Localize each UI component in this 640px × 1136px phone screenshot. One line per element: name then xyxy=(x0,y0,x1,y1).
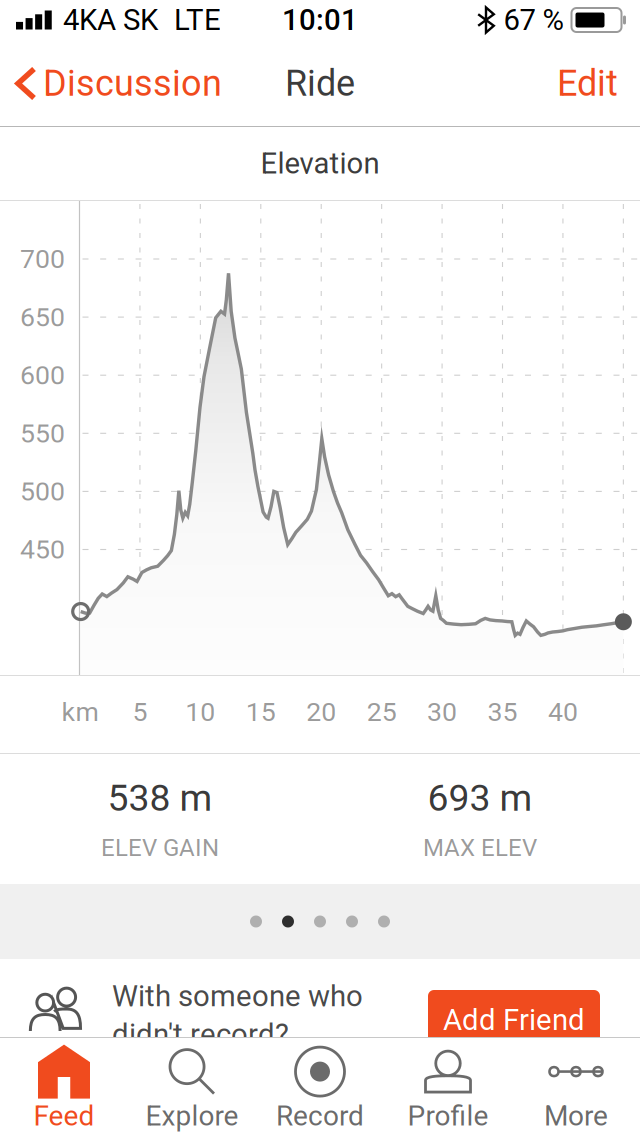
button[interactable]: Record xyxy=(256,1037,384,1135)
staticText: 693 m xyxy=(427,776,532,820)
staticText: didn't record? xyxy=(112,1017,289,1052)
staticText: Feed xyxy=(33,1100,94,1132)
button[interactable]: Profile xyxy=(384,1037,512,1135)
staticText: Record xyxy=(276,1100,364,1132)
button[interactable]: Edit xyxy=(535,40,640,127)
staticText: LTE xyxy=(174,3,221,37)
staticText: Discussion xyxy=(43,62,222,105)
staticText: ELEV GAIN xyxy=(101,834,219,862)
staticText: Elevation xyxy=(260,146,379,181)
staticText: 25 xyxy=(367,696,397,728)
staticText: 30 xyxy=(427,696,457,728)
button[interactable]: Discussion xyxy=(0,40,232,127)
button[interactable]: Feed xyxy=(0,1037,128,1135)
staticText: Explore xyxy=(145,1100,238,1132)
staticText: 500 xyxy=(20,476,65,507)
staticText: 600 xyxy=(20,360,65,391)
staticText: 650 xyxy=(20,301,65,333)
staticText: km xyxy=(61,696,98,728)
staticText: MAX ELEV xyxy=(423,834,537,862)
staticText: 15 xyxy=(246,696,276,728)
staticText: 5 xyxy=(132,696,147,728)
button[interactable]: Add Friend xyxy=(428,990,600,1050)
staticText: 10:01 xyxy=(282,3,358,37)
staticText: Ride xyxy=(285,62,355,105)
staticText: 35 xyxy=(487,696,517,728)
staticText: 40 xyxy=(548,696,578,728)
staticText: 550 xyxy=(20,418,65,449)
button[interactable]: More xyxy=(512,1037,640,1135)
staticText: 10 xyxy=(185,696,215,728)
staticText: 4KA SK xyxy=(63,3,158,37)
staticText: 450 xyxy=(20,534,65,565)
staticText: Profile xyxy=(407,1100,488,1132)
button[interactable]: Explore xyxy=(128,1037,256,1135)
staticText: Add Friend xyxy=(443,1003,585,1037)
staticText: 538 m xyxy=(107,776,212,820)
staticText: 20 xyxy=(306,696,336,728)
staticText: With someone who xyxy=(112,979,363,1013)
staticText: 700 xyxy=(20,243,65,275)
staticText: More xyxy=(544,1100,608,1132)
staticText: Edit xyxy=(557,62,618,105)
staticText: 67 % xyxy=(503,3,563,37)
